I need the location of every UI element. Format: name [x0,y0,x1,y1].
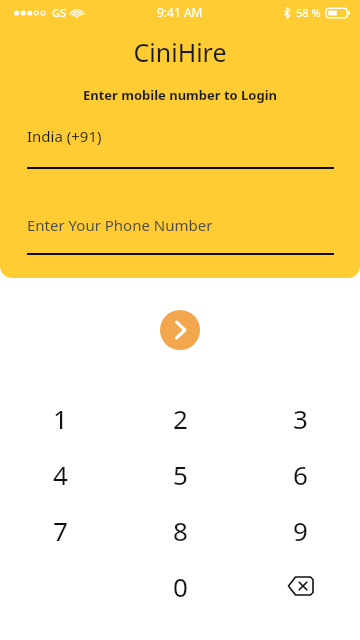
button[interactable]: Next [160,310,200,350]
staticText: India (+91) [27,126,102,146]
button[interactable]: India (+91) [27,126,334,169]
button[interactable]: 6 [240,446,360,502]
button[interactable]: 0 [120,558,240,614]
button[interactable]: 3 [240,390,360,446]
button[interactable]: 5 [120,446,240,502]
staticText: CiniHire [0,35,360,69]
staticText: 1 [53,401,68,436]
button[interactable]: 1 [0,390,120,446]
staticText: 7 [53,513,68,548]
staticText: 6 [293,457,308,492]
staticText: Enter Your Phone Number [27,215,213,235]
button[interactable]: Backspace [240,558,360,614]
staticText: 58 % [296,5,321,20]
staticText: 0 [173,569,188,604]
button[interactable]: Enter Your Phone Number [27,215,334,255]
button[interactable]: 8 [120,502,240,558]
staticText: 2 [173,401,188,436]
button[interactable]: 4 [0,446,120,502]
button[interactable]: 2 [120,390,240,446]
staticText: 3 [293,401,308,436]
staticText: 5 [173,457,188,492]
staticText: 9 [293,513,308,548]
staticText: GS [52,5,67,20]
button[interactable]: 7 [0,502,120,558]
staticText: 4 [53,457,68,492]
staticText: Enter mobile number to Login [0,86,360,104]
button[interactable]: 9 [240,502,360,558]
staticText: 8 [173,513,188,548]
staticText: 9:41 AM [157,4,203,20]
